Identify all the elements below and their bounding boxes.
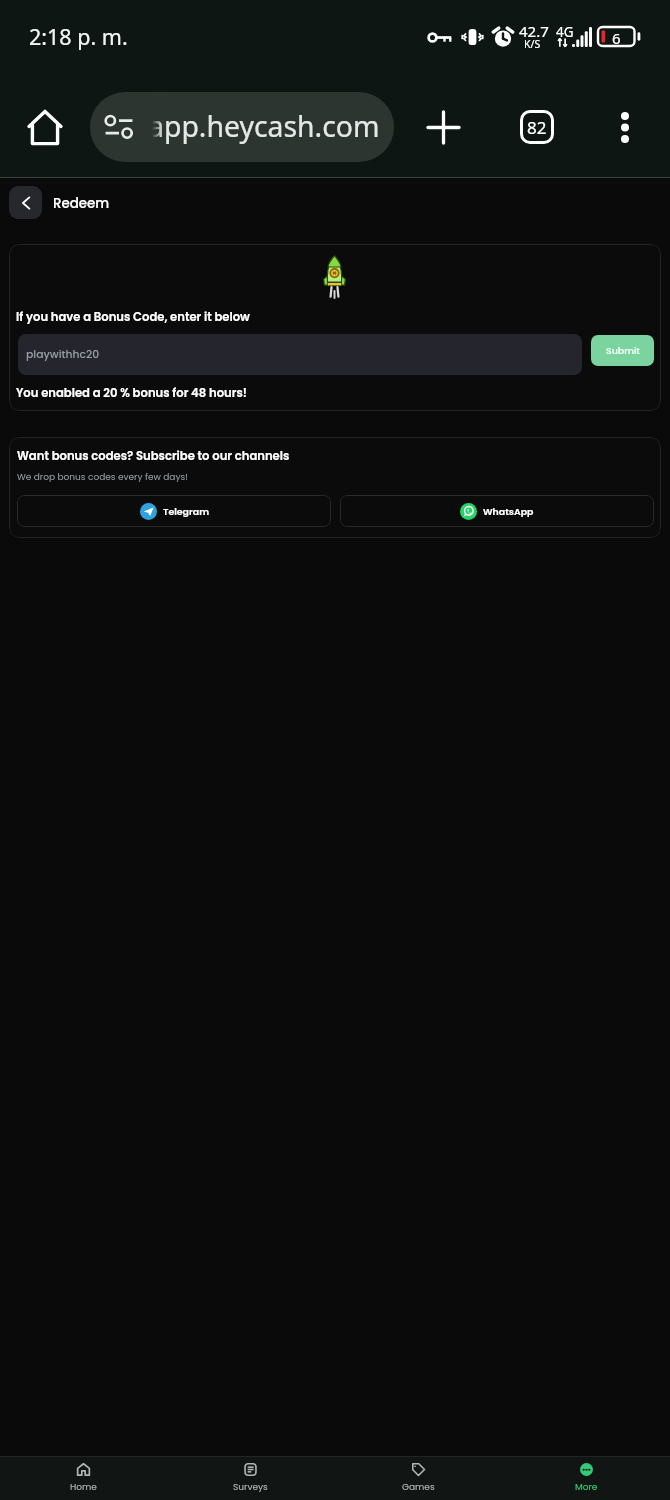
staticText: 4G	[556, 23, 574, 41]
button[interactable]: More	[502, 1457, 670, 1500]
button[interactable]: Surveys	[167, 1457, 334, 1500]
staticText: 42.7	[519, 21, 549, 41]
button[interactable]: Home	[0, 1457, 167, 1500]
button[interactable]: Switch tabs	[511, 101, 563, 153]
button[interactable]: Home	[17, 99, 73, 155]
button[interactable]: WhatsApp	[340, 495, 654, 527]
button[interactable]: playwithhc20	[18, 334, 582, 375]
staticText: K/S	[524, 37, 541, 51]
button[interactable]: Games	[334, 1457, 502, 1500]
button[interactable]: Telegram	[17, 495, 331, 527]
staticText: Submit	[606, 344, 640, 357]
staticText: Want bonus codes? Subscribe to our chann…	[17, 448, 290, 464]
staticText: If you have a Bonus Code, enter it below	[16, 309, 250, 325]
staticText: We drop bonus codes every few days!	[17, 471, 188, 484]
button[interactable]: More options	[599, 101, 651, 153]
staticText: You enabled a 20 % bonus for 48 hours!	[16, 385, 247, 401]
staticText: 82	[527, 116, 547, 139]
staticText: app.heycash.com	[148, 107, 380, 146]
staticText: Redeem	[53, 194, 110, 213]
staticText: Games	[402, 1481, 435, 1494]
staticText: More	[575, 1481, 598, 1494]
button[interactable]: New tab	[417, 101, 469, 153]
button[interactable]: Back	[9, 186, 42, 219]
staticText: Telegram	[163, 505, 209, 518]
staticText: 2:18 p. m.	[29, 22, 128, 51]
button[interactable]: app.heycash.com	[90, 92, 394, 162]
staticText: Surveys	[233, 1481, 268, 1494]
button[interactable]: Submit	[591, 335, 654, 366]
staticText: 6	[612, 28, 621, 48]
staticText: Home	[70, 1481, 97, 1494]
staticText: playwithhc20	[26, 347, 100, 362]
staticText: WhatsApp	[483, 505, 534, 518]
